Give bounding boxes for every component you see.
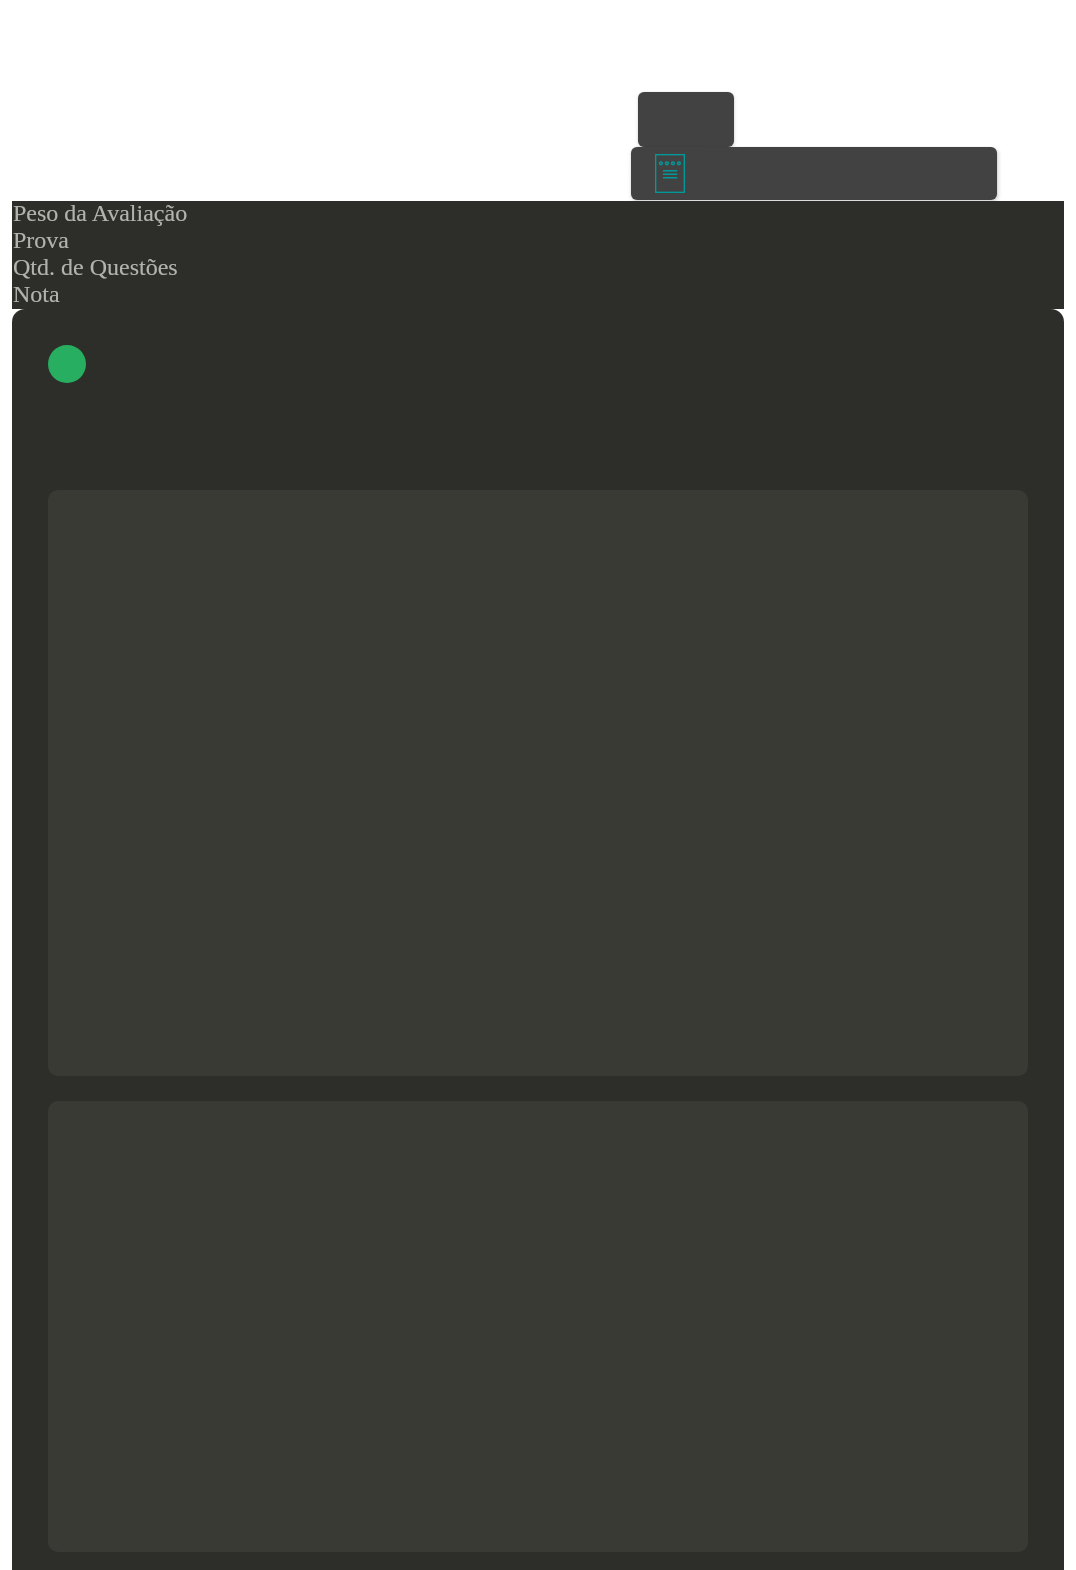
- button[interactable]: Opções: [638, 92, 734, 147]
- button[interactable]: Situação: [48, 345, 86, 383]
- staticText: Peso da Avaliação: [13, 200, 188, 227]
- staticText: Qtd. de Questões: [13, 254, 178, 281]
- staticText: Nota: [13, 281, 60, 308]
- other: Notas: [655, 154, 685, 193]
- button[interactable]: Notas: [631, 147, 997, 200]
- staticText: Prova: [13, 227, 69, 254]
